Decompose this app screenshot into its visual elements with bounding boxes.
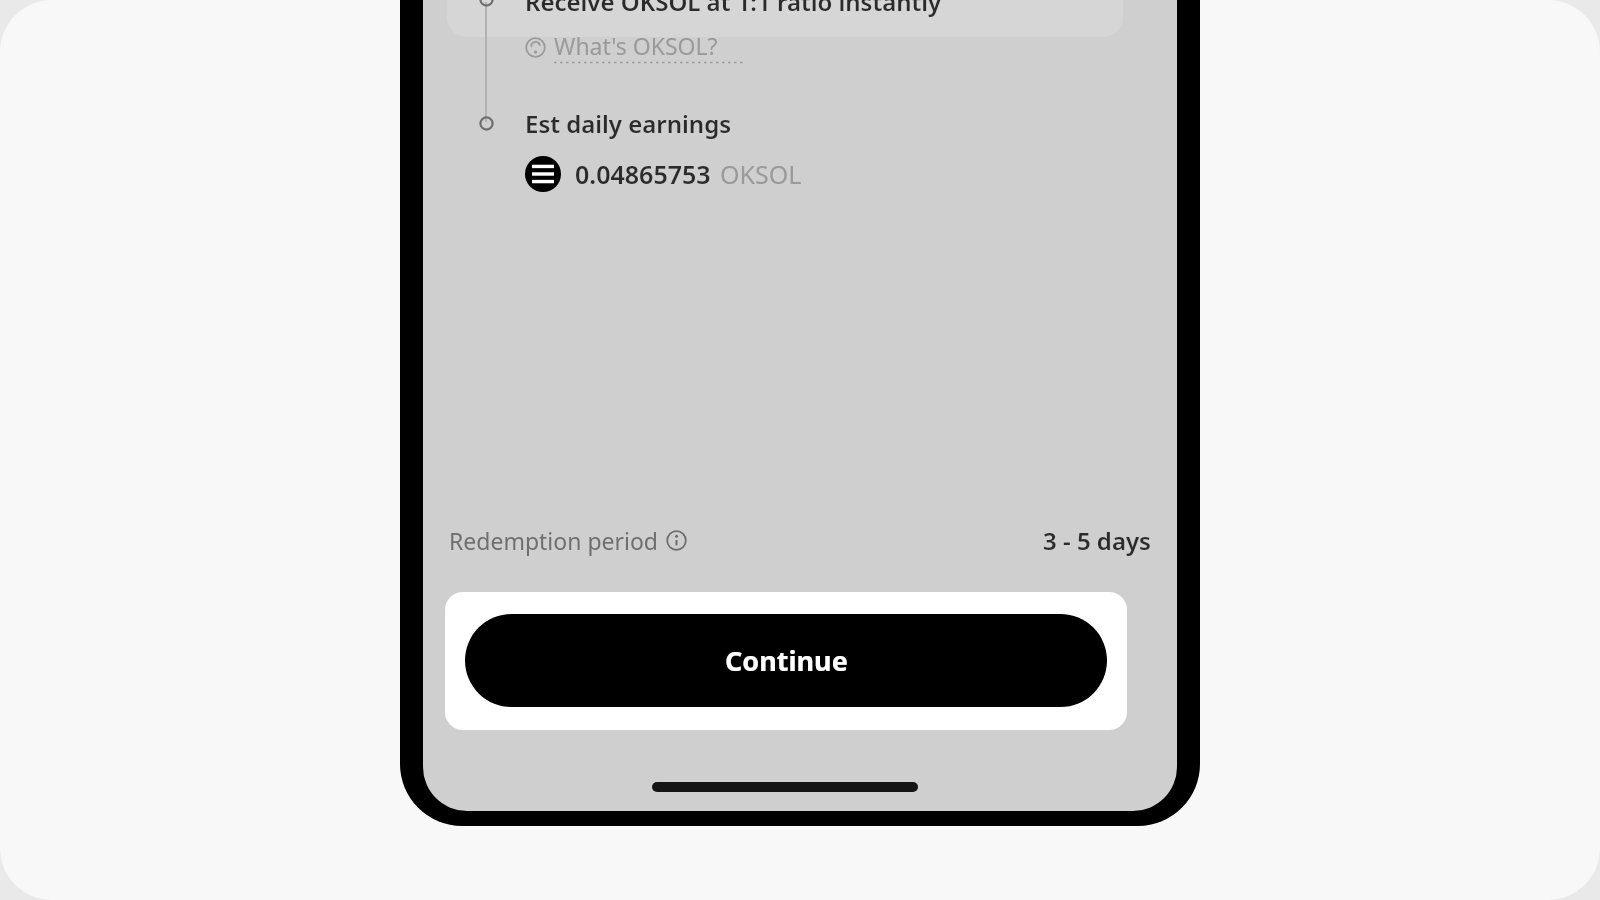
staticText: Receive OKSOL at 1:1 ratio instantly (525, 0, 942, 18)
other: Redemption period info (666, 530, 687, 551)
staticText: Est daily earnings (525, 107, 732, 140)
button[interactable]: Continue (465, 614, 1107, 707)
staticText: OKSOL (720, 157, 802, 191)
staticText: 3 - 5 days (1043, 524, 1151, 557)
staticText: 0.04865753 (575, 157, 711, 191)
staticText: What's OKSOL? (554, 30, 718, 61)
staticText: Redemption period (449, 525, 659, 556)
button[interactable]: Redemption period (449, 525, 687, 556)
button[interactable]: What's OKSOL? (525, 30, 746, 64)
staticText: Continue (725, 642, 848, 679)
